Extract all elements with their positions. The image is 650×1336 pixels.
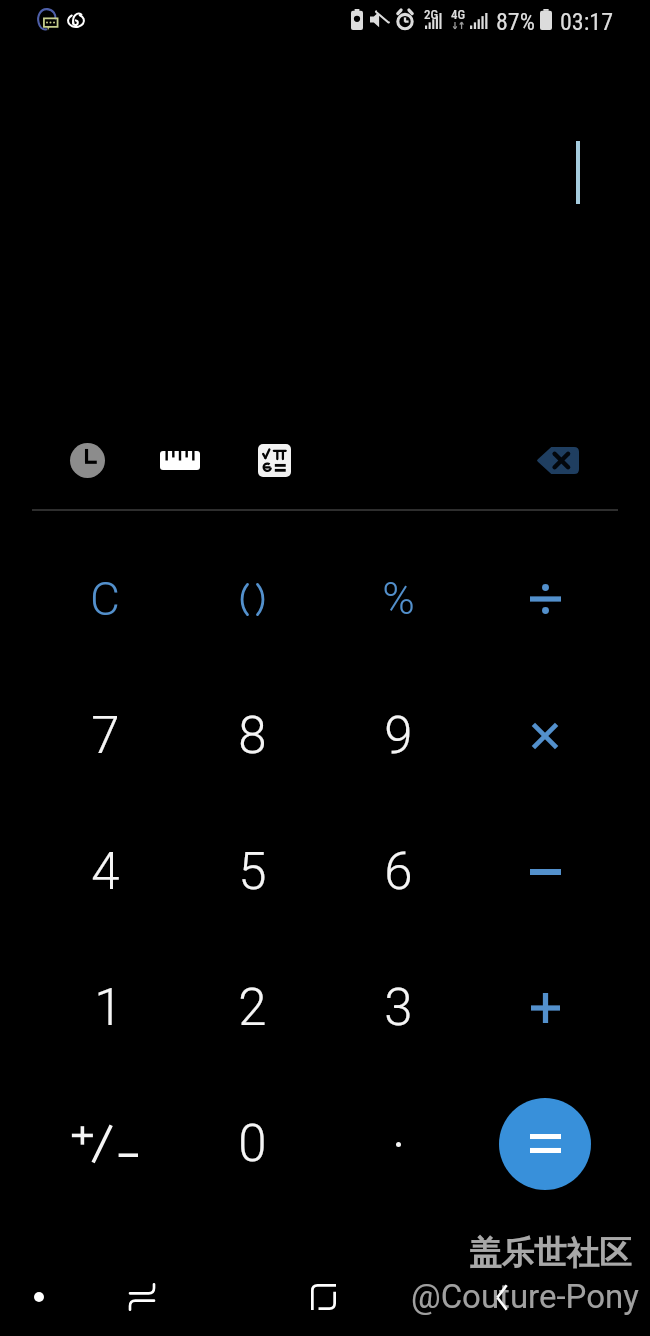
- staticText: 2G: [424, 7, 439, 22]
- button[interactable]: Equals: [499, 1098, 591, 1190]
- staticText: 1: [94, 978, 123, 1038]
- button[interactable]: 2: [179, 940, 325, 1076]
- staticText: 3: [384, 978, 413, 1038]
- button[interactable]: 8: [179, 668, 325, 804]
- staticText: 0: [238, 1114, 267, 1174]
- button[interactable]: History: [63, 436, 111, 484]
- button[interactable]: 0: [179, 1076, 325, 1212]
- staticText: 03:17: [560, 8, 613, 36]
- button[interactable]: Parentheses: [179, 531, 325, 667]
- button[interactable]: 7: [32, 668, 178, 804]
- staticText: 4G: [451, 7, 466, 22]
- button[interactable]: Unit converter: [156, 436, 204, 484]
- staticText: 6: [384, 842, 413, 902]
- button[interactable]: Multiply: [472, 668, 618, 804]
- staticText: 87%: [496, 8, 535, 36]
- staticText: 5: [238, 842, 267, 902]
- staticText: 8: [238, 706, 267, 766]
- button[interactable]: 3: [325, 940, 471, 1076]
- button[interactable]: 9: [325, 668, 471, 804]
- button[interactable]: Back: [119, 1274, 165, 1320]
- button[interactable]: Back: [479, 1275, 524, 1320]
- button[interactable]: %: [325, 531, 471, 667]
- staticText: 9: [384, 706, 413, 766]
- staticText: %: [382, 573, 415, 625]
- button[interactable]: 6: [325, 804, 471, 940]
- button[interactable]: 5: [179, 804, 325, 940]
- staticText: 盖乐世社区: [469, 1233, 632, 1274]
- button[interactable]: 1: [35, 940, 181, 1076]
- button[interactable]: Divide: [472, 531, 618, 667]
- button[interactable]: Subtract: [472, 804, 618, 940]
- button[interactable]: 4: [32, 804, 178, 940]
- button[interactable]: Menu: [19, 1277, 59, 1317]
- button[interactable]: Scientific calculator: [250, 436, 298, 484]
- button[interactable]: Backspace: [534, 436, 582, 484]
- staticText: C: [90, 572, 120, 626]
- staticText: 4: [91, 842, 120, 902]
- staticText: 7: [91, 706, 120, 766]
- button[interactable]: Recents: [301, 1274, 346, 1319]
- button[interactable]: Toggle sign: [32, 1076, 178, 1212]
- button[interactable]: Decimal point: [325, 1076, 471, 1212]
- staticText: @Couture-Pony: [411, 1277, 639, 1316]
- staticText: 2: [238, 978, 267, 1038]
- button[interactable]: Add: [472, 940, 618, 1076]
- button[interactable]: C: [32, 531, 178, 667]
